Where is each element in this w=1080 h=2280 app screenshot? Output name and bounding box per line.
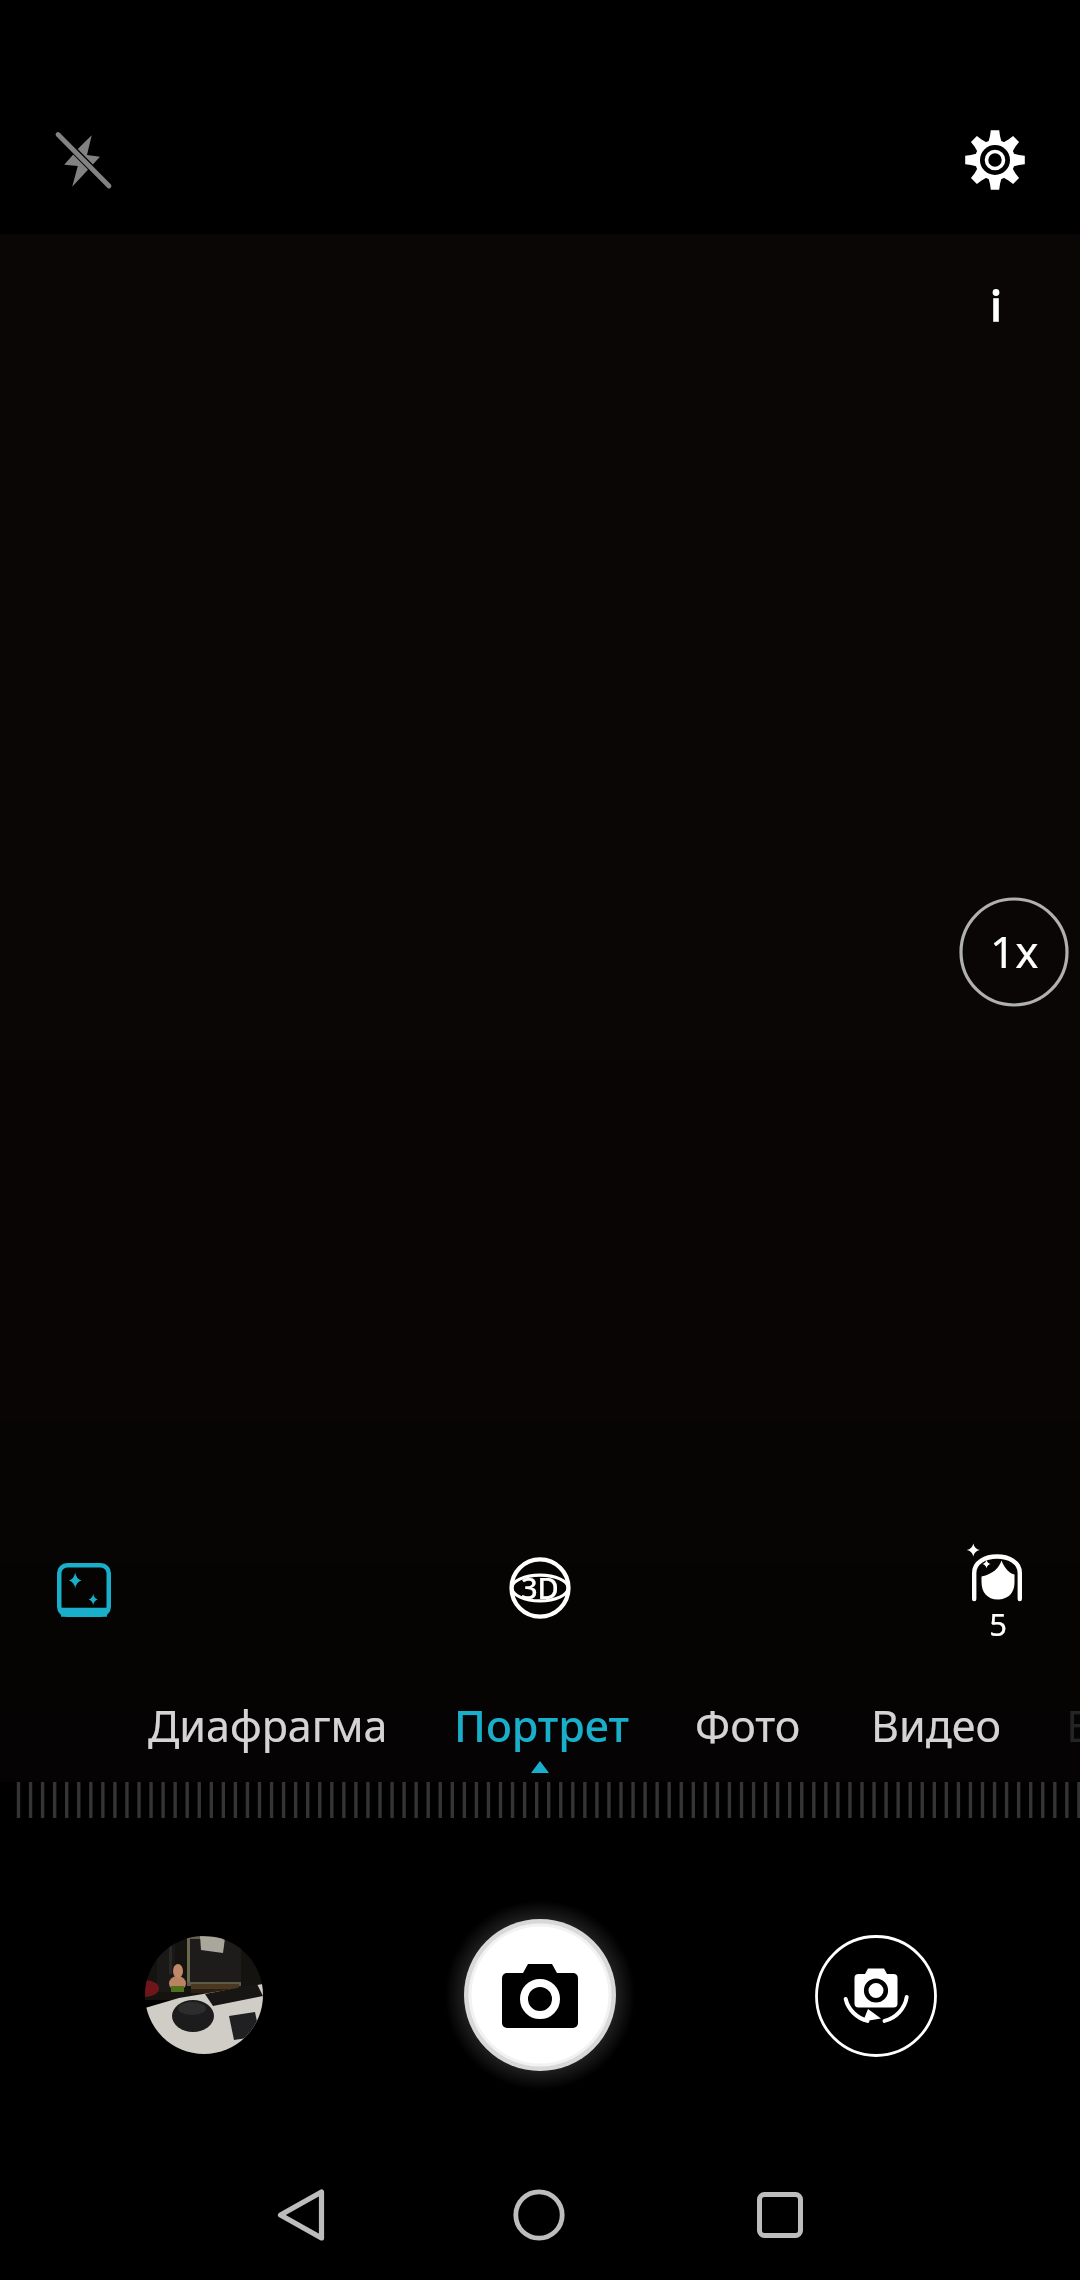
button[interactable]: 3D mode [486, 1534, 594, 1642]
button[interactable]: Filters [30, 1536, 138, 1644]
staticText: Видео [871, 1696, 1001, 1755]
button[interactable]: Flash off [30, 105, 140, 215]
button[interactable]: Info [946, 256, 1046, 356]
button[interactable]: Back [252, 2167, 348, 2263]
staticText: Фото [695, 1696, 801, 1755]
staticText: Портрет [454, 1696, 630, 1755]
button[interactable]: Switch camera [814, 1934, 938, 2058]
button[interactable]: Диафрагма [148, 1696, 388, 1755]
button[interactable]: Settings [940, 105, 1050, 215]
button[interactable]: Еще [1066, 1696, 1080, 1755]
staticText: Еще [1066, 1696, 1080, 1755]
button[interactable]: Gallery [145, 1936, 263, 2054]
staticText: 3D [521, 1568, 559, 1607]
staticText: Диафрагма [148, 1696, 388, 1755]
button[interactable]: Recent apps [732, 2167, 828, 2263]
button[interactable]: Take photo [445, 1900, 635, 2090]
button[interactable]: Фото [695, 1696, 801, 1755]
button[interactable]: Zoom 1x [957, 895, 1071, 1009]
button[interactable]: Home [491, 2167, 587, 2263]
staticText: 1x [990, 921, 1039, 981]
staticText: 5 [945, 1603, 1051, 1645]
button[interactable]: Видео [871, 1696, 1001, 1755]
button[interactable]: Beauty level 5 [944, 1534, 1050, 1646]
button[interactable]: Портрет [454, 1696, 630, 1755]
